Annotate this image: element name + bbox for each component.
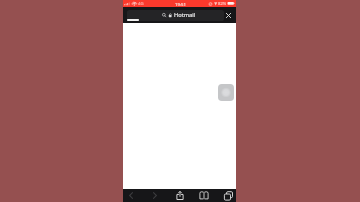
staticText: Hotmail: [174, 11, 196, 19]
button[interactable]: Forward: [147, 189, 163, 202]
button[interactable]: [127, 10, 224, 21]
button[interactable]: Back: [123, 189, 139, 202]
button[interactable]: Share: [172, 189, 188, 202]
button[interactable]: Close: [223, 10, 234, 21]
button[interactable]: Bookmarks: [196, 189, 212, 202]
staticText: 4G: [138, 1, 144, 7]
staticText: 19:51: [175, 1, 186, 7]
staticText: 82%: [218, 1, 227, 7]
button[interactable]: Tabs: [220, 189, 236, 202]
